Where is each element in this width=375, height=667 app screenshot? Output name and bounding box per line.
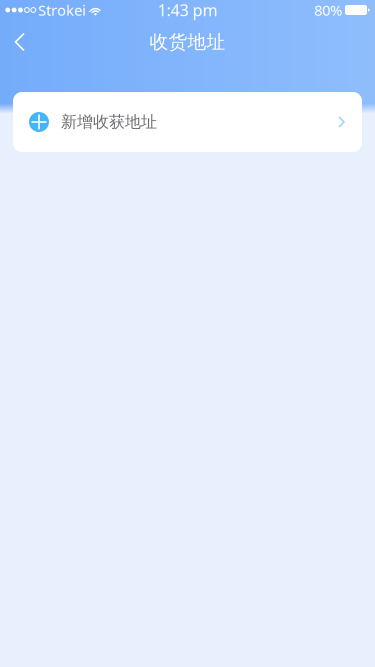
staticText: 80% bbox=[314, 0, 342, 20]
button[interactable]: 新增收获地址 bbox=[13, 92, 362, 152]
staticText: 新增收获地址 bbox=[61, 112, 157, 132]
staticText: 1:43 pm bbox=[157, 0, 217, 21]
button[interactable]: Back bbox=[0, 20, 40, 64]
staticText: Strokei bbox=[38, 0, 86, 20]
staticText: 收货地址 bbox=[149, 30, 225, 53]
